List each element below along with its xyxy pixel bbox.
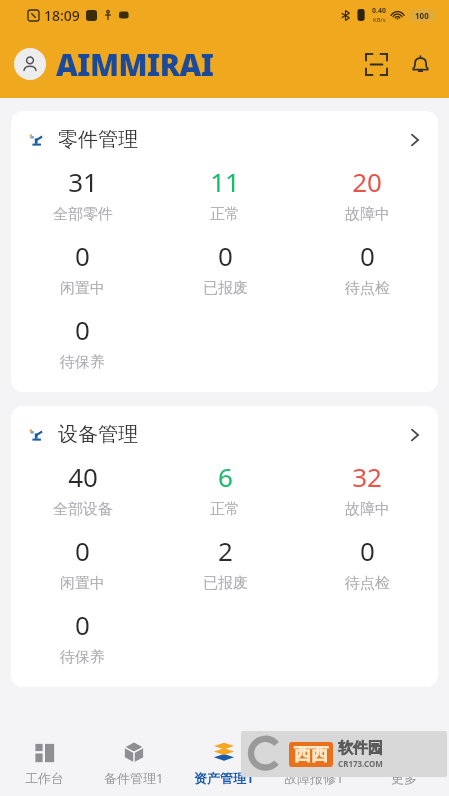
staticText: 100 xyxy=(415,10,429,21)
staticText: 工作台 xyxy=(25,770,64,786)
staticText: 零件管理 xyxy=(58,127,138,152)
staticText: 资产管理1 xyxy=(194,769,254,787)
button[interactable]: Notifications xyxy=(405,49,435,79)
staticText: 待保养 xyxy=(60,353,105,372)
staticText: 故障中 xyxy=(345,500,390,519)
staticText: 20 xyxy=(352,164,382,199)
staticText: 0 xyxy=(75,238,90,273)
staticText: 待点检 xyxy=(345,574,390,593)
staticText: 正常 xyxy=(210,205,240,224)
button[interactable]: 资产管理1 xyxy=(179,731,269,796)
staticText: 0 xyxy=(75,533,90,568)
staticText: 31 xyxy=(68,164,98,199)
button[interactable]: Scan xyxy=(361,49,391,79)
staticText: 已报废 xyxy=(203,279,248,298)
staticText: 闲置中 xyxy=(60,279,105,298)
staticText: 0.40 xyxy=(372,6,386,16)
button[interactable]: 故障报修1 xyxy=(269,731,359,796)
staticText: 待点检 xyxy=(345,279,390,298)
staticText: 备件管理1 xyxy=(104,769,164,787)
button[interactable]: 更多 xyxy=(359,731,449,796)
staticText: 设备管理 xyxy=(58,422,138,447)
staticText: 已报废 xyxy=(203,574,248,593)
staticText: AIMMIRAI xyxy=(56,44,214,85)
staticText: 故障中 xyxy=(345,205,390,224)
staticText: 软件园 xyxy=(338,739,383,758)
staticText: 0 xyxy=(360,533,375,568)
staticText: 正常 xyxy=(210,500,240,519)
staticText: 闲置中 xyxy=(60,574,105,593)
staticText: 0 xyxy=(360,238,375,273)
staticText: 0 xyxy=(75,607,90,642)
button[interactable]: Profile xyxy=(14,48,46,80)
button[interactable]: 设备管理 xyxy=(11,406,438,687)
staticText: 待保养 xyxy=(60,648,105,667)
button[interactable]: 工作台 xyxy=(0,731,89,796)
staticText: 西西 xyxy=(294,744,328,765)
staticText: 0 xyxy=(218,238,233,273)
staticText: 全部零件 xyxy=(53,205,113,224)
staticText: 全部设备 xyxy=(53,500,113,519)
button[interactable]: 备件管理1 xyxy=(89,731,179,796)
staticText: 18:09 xyxy=(44,6,80,25)
staticText: 11 xyxy=(210,164,240,199)
staticText: 更多 xyxy=(391,770,417,786)
staticText: 2 xyxy=(218,533,233,568)
staticText: 40 xyxy=(68,459,98,494)
staticText: 32 xyxy=(352,459,382,494)
staticText: 0 xyxy=(75,312,90,347)
staticText: KB/s xyxy=(373,16,386,24)
button[interactable]: 零件管理 xyxy=(11,111,438,392)
staticText: CR173.COM xyxy=(338,758,383,769)
staticText: 故障报修1 xyxy=(284,769,344,787)
staticText: 6 xyxy=(218,459,233,494)
